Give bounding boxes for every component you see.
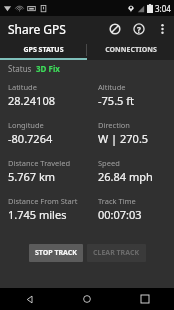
staticText: 5.767 km [8, 169, 56, 184]
button[interactable]: GPS STATUS [0, 42, 86, 58]
staticText: Latitude [8, 82, 37, 92]
staticText: CLEAR TRACK [93, 248, 140, 258]
staticText: Longitude [8, 120, 44, 130]
button[interactable]: CLEAR TRACK [87, 244, 146, 262]
staticText: Altitude [98, 82, 126, 92]
staticText: 28.24108 [8, 93, 55, 108]
staticText: 26.84 mph [98, 169, 153, 184]
staticText: 00:07:03 [98, 207, 142, 222]
button[interactable]: Back [0, 288, 58, 310]
staticText: Status [8, 63, 32, 74]
button[interactable]: Location off [103, 17, 127, 41]
staticText: Distance Traveled [8, 158, 71, 168]
staticText: Track Time [98, 196, 136, 206]
staticText: Direction [98, 120, 131, 130]
button[interactable]: More options [151, 18, 173, 40]
staticText: CONNECTIONS [105, 45, 157, 55]
staticText: ? [137, 24, 141, 35]
button[interactable]: Home [58, 288, 116, 310]
button[interactable]: Recent apps [116, 288, 174, 310]
staticText: W | 270.5 [98, 131, 149, 146]
staticText: -75.5 ft [98, 93, 134, 108]
staticText: -80.7264 [8, 131, 53, 146]
staticText: Share GPS [8, 21, 66, 37]
staticText: 3D Fix [36, 63, 60, 74]
staticText: 1.745 miles [8, 207, 67, 222]
button[interactable]: STOP TRACK [29, 244, 83, 262]
staticText: Distance From Start [8, 196, 78, 206]
button[interactable]: CONNECTIONS [87, 42, 174, 58]
staticText: STOP TRACK [35, 248, 77, 258]
button[interactable]: Help [127, 17, 151, 41]
staticText: 3:04 [155, 3, 171, 14]
staticText: GPS STATUS [23, 45, 64, 55]
staticText: Speed [98, 158, 120, 168]
